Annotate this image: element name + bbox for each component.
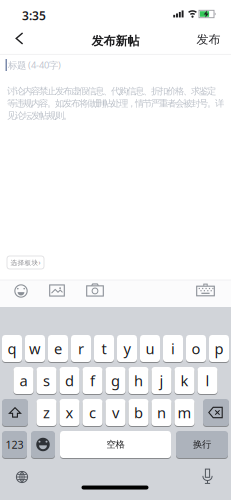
- staticText: 发布新帖: [91, 34, 139, 48]
- staticText: 空格: [106, 439, 124, 450]
- staticText: 3:35: [22, 7, 46, 23]
- button[interactable]: f: [82, 367, 102, 394]
- staticText: h: [134, 371, 143, 390]
- button[interactable]: j: [151, 367, 171, 394]
- staticText: y: [123, 339, 130, 358]
- button[interactable]: Camera: [82, 279, 108, 301]
- button[interactable]: Hide keyboard: [192, 279, 219, 300]
- staticText: g: [111, 371, 120, 390]
- staticText: t: [101, 339, 106, 358]
- button[interactable]: q: [2, 335, 22, 362]
- button[interactable]: v: [105, 399, 125, 426]
- button[interactable]: Back: [9, 26, 30, 51]
- staticText: v: [112, 403, 119, 422]
- button[interactable]: y: [117, 335, 137, 362]
- staticText: u: [145, 339, 154, 358]
- button[interactable]: n: [151, 399, 171, 426]
- staticText: m: [177, 403, 191, 422]
- button[interactable]: 选择板块›: [7, 256, 44, 269]
- button[interactable]: e: [48, 335, 68, 362]
- button[interactable]: Shift: [2, 399, 28, 426]
- staticText: e: [54, 339, 62, 358]
- staticText: 发布: [196, 32, 220, 47]
- staticText: w: [29, 339, 41, 358]
- staticText: a: [19, 371, 27, 390]
- staticText: 选择板块›: [10, 258, 40, 267]
- button[interactable]: u: [140, 335, 160, 362]
- staticText: b: [134, 403, 143, 422]
- staticText: 等违规内容。如发布将做删帖处理，情节严重者会被封号。详: [7, 98, 224, 109]
- button[interactable]: r: [71, 335, 91, 362]
- staticText: o: [191, 339, 200, 358]
- button[interactable]: 123: [2, 431, 27, 458]
- staticText: n: [157, 403, 166, 422]
- button[interactable]: c: [82, 399, 102, 426]
- button[interactable]: Emoji keyboard: [31, 431, 55, 458]
- button[interactable]: t: [94, 335, 114, 362]
- button[interactable]: Emoji: [10, 280, 32, 302]
- staticText: q: [7, 339, 16, 358]
- staticText: z: [43, 403, 50, 422]
- staticText: 123: [5, 437, 23, 452]
- button[interactable]: k: [174, 367, 194, 394]
- button[interactable]: i: [163, 335, 183, 362]
- button[interactable]: a: [13, 367, 33, 394]
- button[interactable]: w: [25, 335, 45, 362]
- button[interactable]: b: [128, 399, 148, 426]
- button[interactable]: 发布: [192, 28, 224, 51]
- staticText: f: [90, 371, 95, 390]
- staticText: x: [65, 403, 73, 422]
- button[interactable]: Next keyboard: [10, 465, 33, 488]
- staticText: s: [43, 371, 50, 390]
- staticText: i: [171, 339, 175, 358]
- button[interactable]: m: [174, 399, 194, 426]
- staticText: l: [205, 371, 209, 390]
- staticText: 换行: [193, 439, 211, 450]
- button[interactable]: h: [128, 367, 148, 394]
- staticText: j: [159, 371, 163, 390]
- button[interactable]: l: [197, 367, 217, 394]
- button[interactable]: p: [209, 335, 229, 362]
- staticText: r: [78, 339, 84, 358]
- button[interactable]: d: [59, 367, 79, 394]
- button[interactable]: 换行: [176, 431, 228, 458]
- button[interactable]: 空格: [60, 431, 171, 458]
- button[interactable]: Delete: [203, 399, 229, 426]
- staticText: p: [214, 339, 223, 358]
- button[interactable]: x: [59, 399, 79, 426]
- button[interactable]: z: [36, 399, 56, 426]
- staticText: 标题 (4-40字): [8, 59, 61, 71]
- button[interactable]: s: [36, 367, 56, 394]
- button[interactable]: g: [105, 367, 125, 394]
- staticText: k: [180, 371, 188, 390]
- staticText: 讨论内容禁止发布虚假信息、代购信息、折扣价格、求鉴定: [7, 85, 216, 97]
- button[interactable]: Photo: [45, 280, 69, 301]
- button[interactable]: Dictate: [196, 463, 218, 489]
- button[interactable]: o: [186, 335, 206, 362]
- staticText: c: [89, 403, 96, 422]
- staticText: d: [65, 371, 74, 390]
- staticText: 见论坛发帖规则。: [7, 110, 72, 121]
